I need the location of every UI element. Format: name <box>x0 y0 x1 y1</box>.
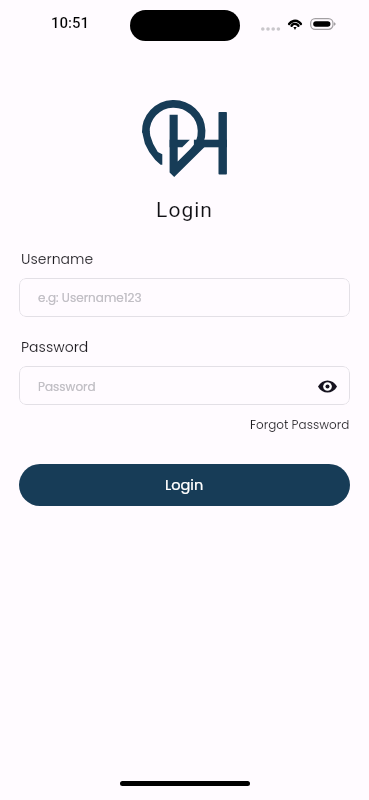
staticText: e.g: Username123 <box>38 289 142 306</box>
staticText: Password <box>38 378 315 395</box>
staticText: 10:51 <box>51 14 90 32</box>
button[interactable]: Show password <box>315 374 339 398</box>
button[interactable]: Password <box>19 366 350 405</box>
staticText: Login <box>0 198 369 223</box>
button[interactable]: e.g: Username123 <box>19 278 350 317</box>
button[interactable]: Forgot Password <box>250 416 350 433</box>
staticText: Login <box>165 475 204 495</box>
staticText: Username <box>21 249 94 269</box>
button[interactable]: Login <box>19 464 350 506</box>
staticText: Password <box>21 337 89 357</box>
